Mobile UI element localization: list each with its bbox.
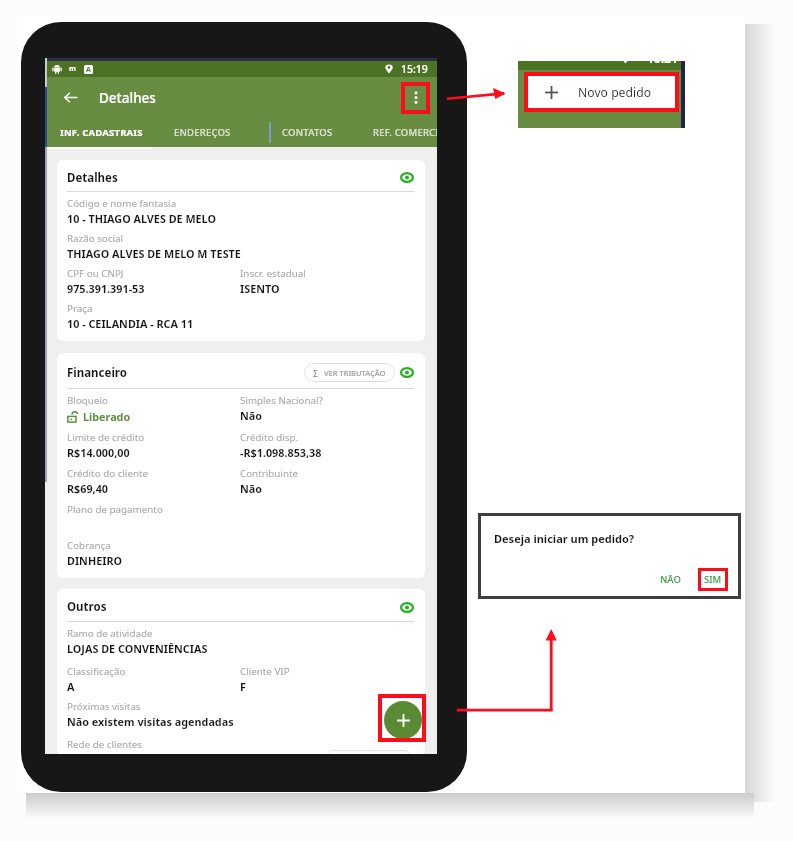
- staticText: Contribuinte: [240, 467, 299, 480]
- staticText: CPF ou CNPJ: [67, 267, 124, 280]
- staticText: Crédito disp.: [240, 431, 299, 444]
- staticText: Detalhes: [67, 170, 118, 186]
- staticText: Razão social: [67, 232, 124, 245]
- staticText: 10:21: [647, 61, 678, 66]
- button[interactable]: CONTATOS: [256, 118, 359, 147]
- staticText: Inscr. estadual: [240, 267, 306, 280]
- staticText: ISENTO: [240, 281, 280, 296]
- staticText: NÃO: [660, 573, 681, 586]
- staticText: Crédito do cliente: [67, 467, 149, 480]
- staticText: ENDEREÇOS: [174, 126, 231, 139]
- staticText: Financeiro: [67, 365, 127, 381]
- staticText: VER TRIBUTAÇÃO: [324, 368, 386, 378]
- staticText: 975.391.391-53: [67, 281, 145, 296]
- staticText: A: [67, 679, 75, 694]
- button[interactable]: Add: [384, 701, 422, 739]
- staticText: m: [69, 64, 76, 74]
- staticText: Cobrança: [67, 539, 111, 552]
- staticText: Plano de pagamento: [67, 503, 163, 516]
- button[interactable]: Action: [327, 750, 410, 754]
- button[interactable]: Outros: [57, 589, 425, 754]
- staticText: Próximas visitas: [67, 700, 141, 713]
- staticText: Não: [240, 408, 262, 423]
- button[interactable]: Financeiro: [57, 353, 425, 578]
- staticText: R$14.000,00: [67, 445, 130, 460]
- button[interactable]: Novo pedido: [528, 76, 676, 108]
- staticText: REF. COMERCIA: [373, 126, 437, 139]
- staticText: Cliente VIP: [240, 665, 290, 678]
- staticText: Classificação: [67, 665, 126, 678]
- staticText: Praça: [67, 302, 93, 315]
- staticText: 10 - CEILANDIA - RCA 11: [67, 316, 194, 331]
- button[interactable]: Σ: [304, 363, 395, 382]
- staticText: Ramo de atividade: [67, 627, 153, 640]
- staticText: Bloqueio: [67, 394, 108, 407]
- staticText: Novo pedido: [578, 84, 652, 101]
- button[interactable]: INF. CADASTRAIS: [45, 118, 157, 147]
- staticText: R$69,40: [67, 481, 109, 496]
- staticText: 10 - THIAGO ALVES DE MELO: [67, 211, 216, 226]
- staticText: LOJAS DE CONVENIÊNCIAS: [67, 641, 208, 656]
- staticText: Não existem visitas agendadas: [67, 714, 234, 729]
- staticText: Outros: [67, 599, 107, 615]
- staticText: Simples Nacional?: [240, 394, 323, 407]
- staticText: Deseja iniciar um pedido?: [494, 531, 635, 546]
- staticText: Σ: [313, 367, 319, 379]
- button[interactable]: Detalhes: [57, 160, 425, 341]
- button[interactable]: SIM: [698, 568, 727, 591]
- staticText: CONTATOS: [282, 126, 333, 139]
- staticText: Detalhes: [99, 89, 156, 107]
- staticText: Código e nome fantasia: [67, 197, 177, 210]
- staticText: INF. CADASTRAIS: [60, 126, 143, 139]
- staticText: -R$1.098.853,38: [240, 445, 322, 460]
- staticText: 15:19: [401, 62, 428, 76]
- staticText: F: [240, 679, 246, 694]
- button[interactable]: REF. COMERCIA: [373, 118, 437, 147]
- staticText: Limite de crédito: [67, 431, 145, 444]
- staticText: THIAGO ALVES DE MELO M TESTE: [67, 246, 241, 261]
- button[interactable]: Toggle visibility: [400, 172, 414, 183]
- staticText: Liberado: [83, 409, 131, 424]
- button[interactable]: Toggle visibility: [400, 602, 414, 613]
- staticText: Rede de clientes: [67, 738, 142, 751]
- staticText: SIM: [704, 573, 722, 586]
- button[interactable]: More options: [401, 82, 430, 113]
- staticText: A: [86, 65, 91, 74]
- button[interactable]: ENDEREÇOS: [151, 118, 254, 147]
- button[interactable]: Back: [54, 77, 86, 118]
- button[interactable]: Toggle visibility: [400, 367, 414, 378]
- staticText: Não: [240, 481, 262, 496]
- button[interactable]: NÃO: [654, 571, 687, 588]
- staticText: DINHEIRO: [67, 553, 123, 568]
